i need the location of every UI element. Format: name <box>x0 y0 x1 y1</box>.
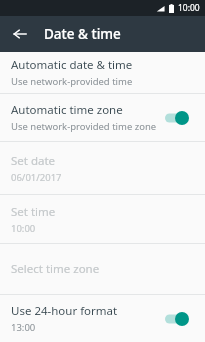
staticText: Automatic date & time <box>11 57 133 73</box>
staticText: Date & time <box>44 25 121 43</box>
button[interactable]: Automatic time zone <box>0 94 205 141</box>
button[interactable]: Set time <box>0 195 205 243</box>
staticText: 10:00 <box>178 2 200 14</box>
staticText: Set time <box>11 204 56 220</box>
button[interactable]: Set date <box>0 142 205 194</box>
button[interactable]: Select time zone <box>0 244 205 294</box>
staticText: 06/01/2017 <box>11 171 62 184</box>
staticText: 13:00 <box>11 321 36 334</box>
staticText: 10:00 <box>11 222 36 235</box>
button[interactable]: Toggle <box>161 308 195 330</box>
staticText: Select time zone <box>11 261 100 277</box>
staticText: Use 24-hour format <box>11 303 118 319</box>
button[interactable]: Toggle <box>161 107 195 129</box>
button[interactable]: Back <box>6 20 34 48</box>
button[interactable]: Automatic date & time <box>0 52 205 93</box>
staticText: Automatic time zone <box>11 102 123 118</box>
staticText: Use network-provided time <box>11 75 133 88</box>
staticText: Set date <box>11 153 56 169</box>
staticText: Use network-provided time zone <box>11 120 157 133</box>
button[interactable]: Use 24-hour format <box>0 295 205 342</box>
